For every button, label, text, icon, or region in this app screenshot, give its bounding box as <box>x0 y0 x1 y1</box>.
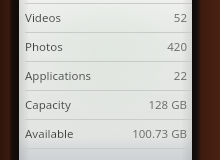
staticText: 22 <box>173 68 187 84</box>
staticText: Applications <box>25 68 92 84</box>
staticText: 52 <box>173 10 187 26</box>
staticText: Photos <box>25 39 63 55</box>
button[interactable]: Available <box>19 119 192 148</box>
button[interactable]: Capacity <box>19 90 192 119</box>
staticText: Capacity <box>25 97 71 113</box>
button[interactable]: Videos <box>19 3 192 32</box>
button[interactable]: Photos <box>19 32 192 61</box>
staticText: Videos <box>25 10 61 26</box>
staticText: 128 GB <box>148 97 187 113</box>
button[interactable]: Applications <box>19 61 192 90</box>
staticText: 100.73 GB <box>132 126 187 142</box>
staticText: Available <box>25 126 74 142</box>
staticText: 420 <box>167 39 187 55</box>
